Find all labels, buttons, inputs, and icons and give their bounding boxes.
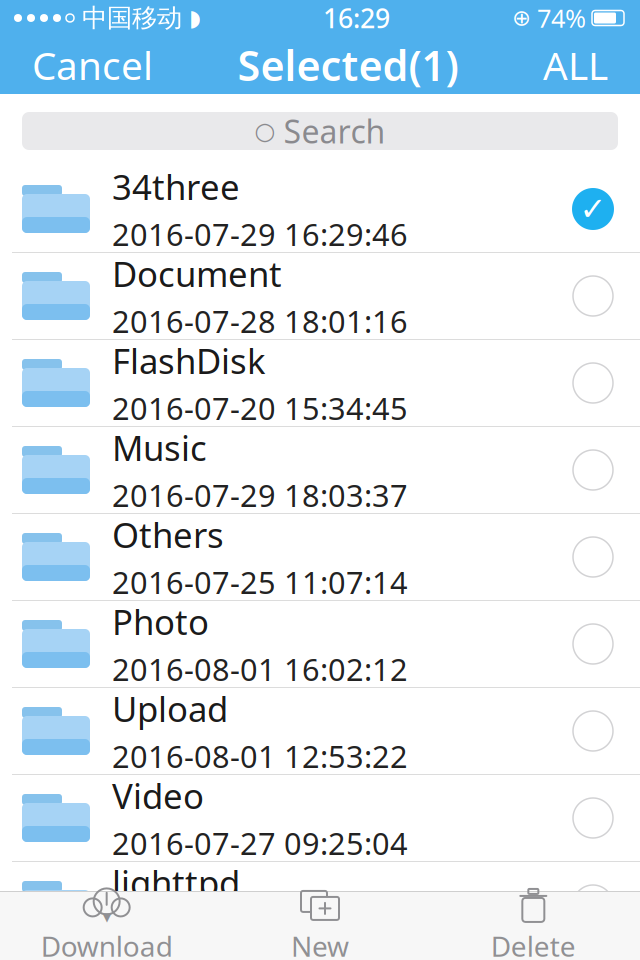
button[interactable]: Cancel	[18, 31, 167, 99]
button[interactable]: Others	[0, 514, 640, 601]
staticText: Music	[112, 425, 207, 471]
staticText: Upload	[112, 686, 228, 732]
button[interactable]: FlashDisk	[0, 340, 640, 427]
button[interactable]: ALL	[529, 31, 622, 99]
staticText: Delete	[491, 927, 576, 960]
button[interactable]: New	[213, 892, 427, 960]
button[interactable]: Photo	[0, 601, 640, 688]
staticText: New	[291, 927, 349, 960]
staticText: 2016-07-20 15:34:45	[112, 388, 408, 428]
staticText: Selected(1)	[237, 38, 458, 92]
staticText: Photo	[112, 599, 209, 645]
staticText: ⊕	[512, 5, 531, 31]
button[interactable]: Video	[0, 775, 640, 862]
staticText: 74%	[537, 1, 586, 35]
staticText: 2016-08-01 16:02:12	[112, 649, 408, 689]
staticText: 2016-07-29 16:29:46	[112, 214, 408, 254]
staticText: 2016-07-27 09:25:04	[112, 823, 408, 863]
staticText: 2016-08-01 12:53:22	[112, 736, 408, 776]
button[interactable]: Document	[0, 253, 640, 340]
staticText: Others	[112, 512, 224, 558]
button[interactable]: ▾	[0, 892, 213, 960]
staticText: ▾	[102, 906, 111, 927]
staticText: Document	[112, 251, 282, 297]
button[interactable]: Upload	[0, 688, 640, 775]
button[interactable]: Delete	[427, 892, 640, 960]
staticText: ○	[254, 117, 275, 145]
button[interactable]: ○	[0, 94, 640, 166]
button[interactable]: lighttpd	[0, 862, 640, 949]
staticText: Search	[283, 110, 385, 152]
staticText: ✓	[579, 191, 606, 227]
button[interactable]: Music	[0, 427, 640, 514]
staticText: 2016-07-25 11:07:14	[112, 562, 408, 602]
staticText: FlashDisk	[112, 338, 266, 384]
staticText: ◗	[189, 5, 201, 31]
staticText: 16:29	[323, 0, 390, 36]
staticText: 2016-07-29 18:03:37	[112, 475, 408, 515]
staticText: Cancel	[32, 39, 153, 91]
staticText: 2016-07-28 18:01:16	[112, 301, 408, 341]
staticText: ALL	[543, 39, 608, 91]
staticText: Video	[112, 773, 204, 819]
staticText: 2016-07-26 10:11:08	[112, 910, 408, 950]
staticText: lighttpd	[112, 860, 240, 906]
staticText: 34three	[112, 164, 240, 210]
button[interactable]: 34three	[0, 166, 640, 253]
staticText: 中国移动	[82, 2, 182, 33]
staticText: Download	[41, 927, 173, 960]
